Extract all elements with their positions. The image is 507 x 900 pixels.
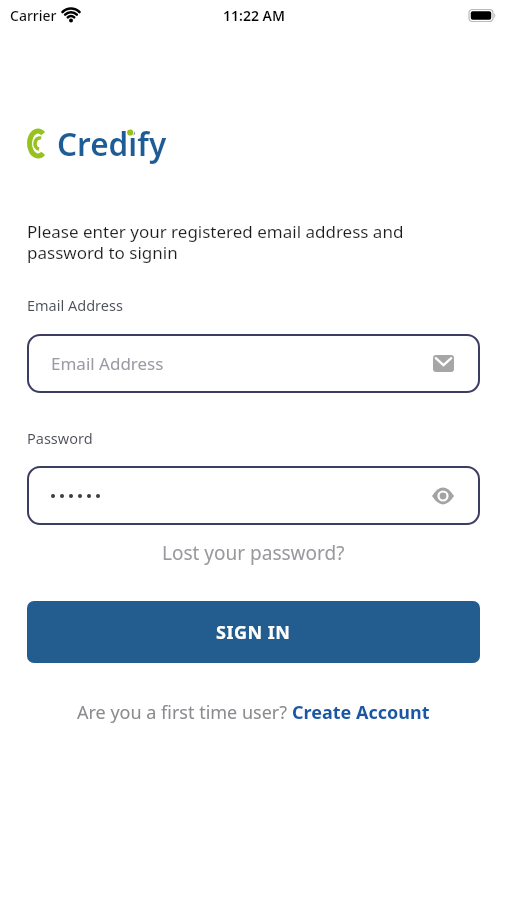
staticText: Password <box>27 428 93 448</box>
button[interactable]: Create Account <box>292 700 430 725</box>
button[interactable]: Lost your password? <box>162 540 345 566</box>
staticText: Email Address <box>27 295 123 315</box>
staticText: Credify <box>57 122 167 165</box>
button[interactable]: SIGN IN <box>27 601 480 663</box>
staticText: Please enter your registered email addre… <box>27 220 404 264</box>
staticText: SIGN IN <box>216 620 291 645</box>
staticText: 11:22 AM <box>223 6 285 25</box>
staticText: Are you a first time user? <box>77 700 292 725</box>
button[interactable] <box>27 466 480 525</box>
button[interactable] <box>432 488 454 504</box>
button[interactable]: Email Address <box>27 334 480 393</box>
staticText: Email Address <box>51 352 164 375</box>
staticText: Carrier <box>10 6 57 25</box>
